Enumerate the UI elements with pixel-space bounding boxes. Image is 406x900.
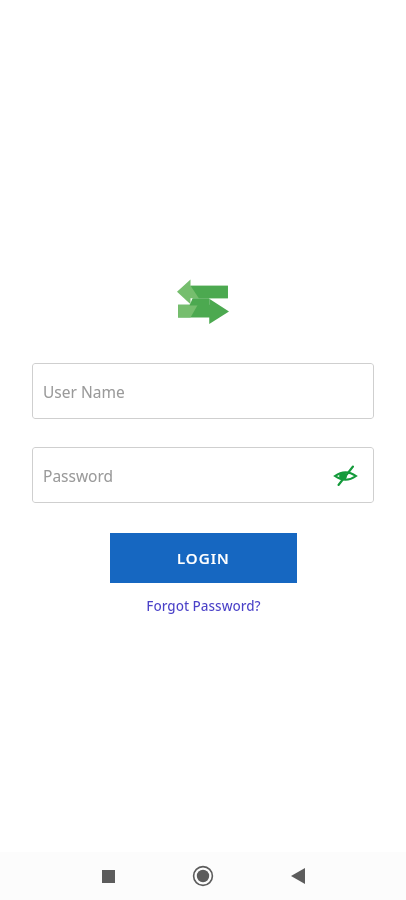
button[interactable]: Password: [32, 447, 374, 503]
button[interactable]: Forgot Password?: [138, 595, 269, 617]
staticText: LOGIN: [177, 548, 230, 568]
button[interactable]: Show password: [330, 460, 360, 490]
button[interactable]: Home: [163, 852, 243, 900]
button[interactable]: LOGIN: [110, 533, 297, 583]
other: App logo: [177, 278, 229, 324]
button[interactable]: Recent apps: [53, 852, 163, 900]
staticText: Forgot Password?: [146, 597, 261, 615]
button[interactable]: Back: [243, 852, 353, 900]
staticText: Password: [43, 465, 330, 486]
button[interactable]: User Name: [32, 363, 374, 419]
staticText: User Name: [43, 381, 360, 402]
